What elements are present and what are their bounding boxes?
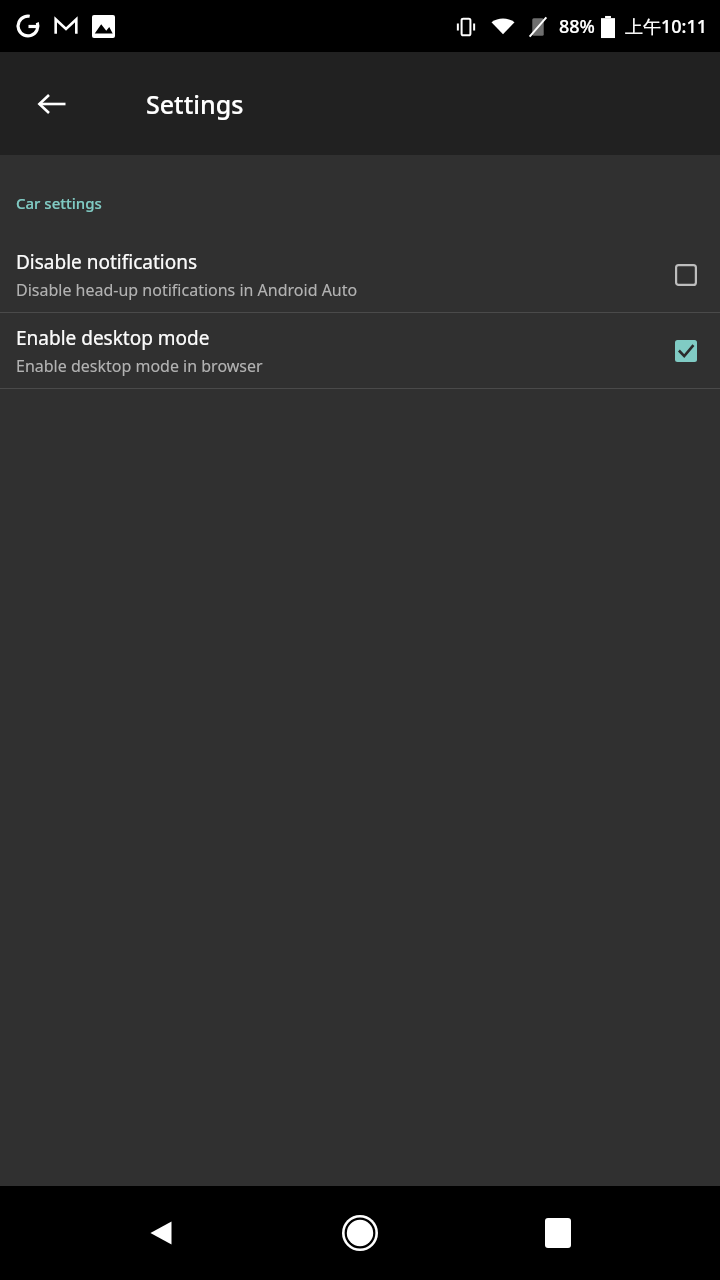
staticText: 88% [559,14,595,39]
staticText: Disable head-up notifications in Android… [16,279,358,301]
button[interactable]: Unchecked [668,257,704,293]
button[interactable]: Home [324,1197,396,1269]
staticText: 上午10:11 [625,14,708,39]
button[interactable]: Checked [668,333,704,369]
staticText: Enable desktop mode in browser [16,355,263,377]
button[interactable]: Back [22,74,82,134]
button[interactable]: Enable desktop mode [0,313,720,388]
button[interactable]: Back [126,1197,198,1269]
staticText: Disable notifications [16,249,198,275]
staticText: Car settings [16,193,102,213]
button[interactable]: Disable notifications [0,237,720,312]
button[interactable]: Recents [522,1197,594,1269]
staticText: Enable desktop mode [16,325,210,351]
staticText: Settings [146,87,244,121]
